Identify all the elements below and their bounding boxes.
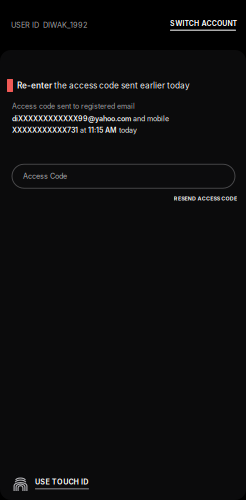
staticText: RESEND ACCESS CODE bbox=[174, 195, 237, 202]
staticText: USE TOUCH ID bbox=[35, 478, 88, 486]
staticText: Access Code bbox=[23, 172, 67, 181]
staticText: Re-enter the access code sent earlier to… bbox=[17, 81, 190, 90]
button[interactable]: Access Code bbox=[12, 164, 235, 188]
staticText: SWITCH ACCOUNT bbox=[170, 19, 238, 28]
staticText: USER ID DIWAK_1992 bbox=[11, 21, 87, 29]
button[interactable]: USE TOUCH ID bbox=[13, 475, 246, 492]
button[interactable]: SWITCH ACCOUNT bbox=[170, 19, 236, 31]
staticText: Access code sent to registered email bbox=[12, 102, 135, 110]
staticText: diXXXXXXXXXXXX99@yahoo.com and mobile bbox=[12, 114, 169, 123]
staticText: XXXXXXXXXXX731 at 11:15 AM today bbox=[12, 126, 137, 134]
button[interactable]: RESEND ACCESS CODE bbox=[174, 195, 237, 202]
